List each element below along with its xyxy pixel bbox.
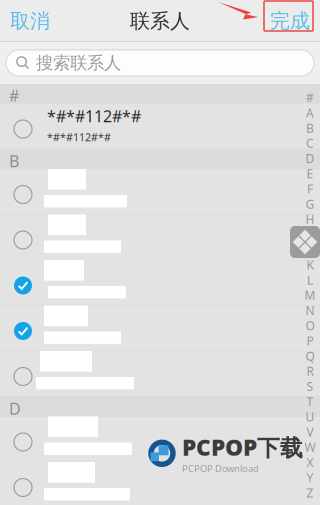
button[interactable]: [0, 215, 320, 260]
staticText: R: [306, 363, 313, 379]
staticText: F: [307, 181, 313, 197]
staticText: T: [306, 394, 313, 409]
staticText: H: [305, 211, 314, 227]
staticText: #: [9, 85, 19, 106]
staticText: I: [308, 226, 312, 242]
staticText: *#*#112#*#: [47, 130, 111, 144]
button[interactable]: *#*#112#*#: [0, 104, 320, 149]
button[interactable]: 完成: [0, 0, 60, 42]
staticText: K: [306, 257, 313, 273]
button[interactable]: Assistive menu: [290, 226, 320, 258]
staticText: Y: [306, 470, 313, 485]
staticText: S: [306, 378, 313, 394]
staticText: #: [306, 90, 314, 105]
staticText: W: [304, 439, 315, 455]
button[interactable]: [0, 462, 320, 505]
staticText: PCPOP下载: [182, 432, 303, 462]
staticText: C: [306, 135, 314, 151]
staticText: B: [9, 150, 19, 172]
button[interactable]: [0, 169, 320, 215]
button[interactable]: Alphabet index: [302, 90, 318, 500]
staticText: 搜索联系人: [36, 52, 121, 74]
staticText: 取消: [10, 9, 50, 33]
staticText: U: [305, 409, 314, 425]
staticText: *#*#112#*#: [47, 105, 141, 127]
staticText: G: [305, 196, 314, 212]
staticText: D: [305, 150, 314, 166]
staticText: X: [306, 454, 313, 470]
staticText: L: [307, 272, 313, 288]
staticText: B: [306, 120, 314, 136]
staticText: 联系人: [130, 9, 190, 33]
staticText: M: [304, 287, 315, 303]
button[interactable]: [0, 351, 320, 397]
staticText: 完成: [270, 9, 310, 33]
button[interactable]: [0, 260, 320, 306]
staticText: PCPOP Download: [182, 462, 259, 475]
staticText: Q: [305, 348, 314, 364]
staticText: A: [306, 105, 314, 121]
staticText: D: [9, 398, 21, 419]
staticText: E: [306, 166, 313, 181]
button[interactable]: 取消: [0, 0, 60, 42]
staticText: O: [305, 318, 314, 333]
staticText: V: [306, 424, 313, 440]
staticText: N: [305, 302, 314, 318]
button[interactable]: [0, 306, 320, 351]
button[interactable]: [0, 417, 320, 462]
staticText: Z: [306, 485, 313, 501]
staticText: P: [306, 333, 313, 349]
staticText: J: [308, 242, 311, 257]
